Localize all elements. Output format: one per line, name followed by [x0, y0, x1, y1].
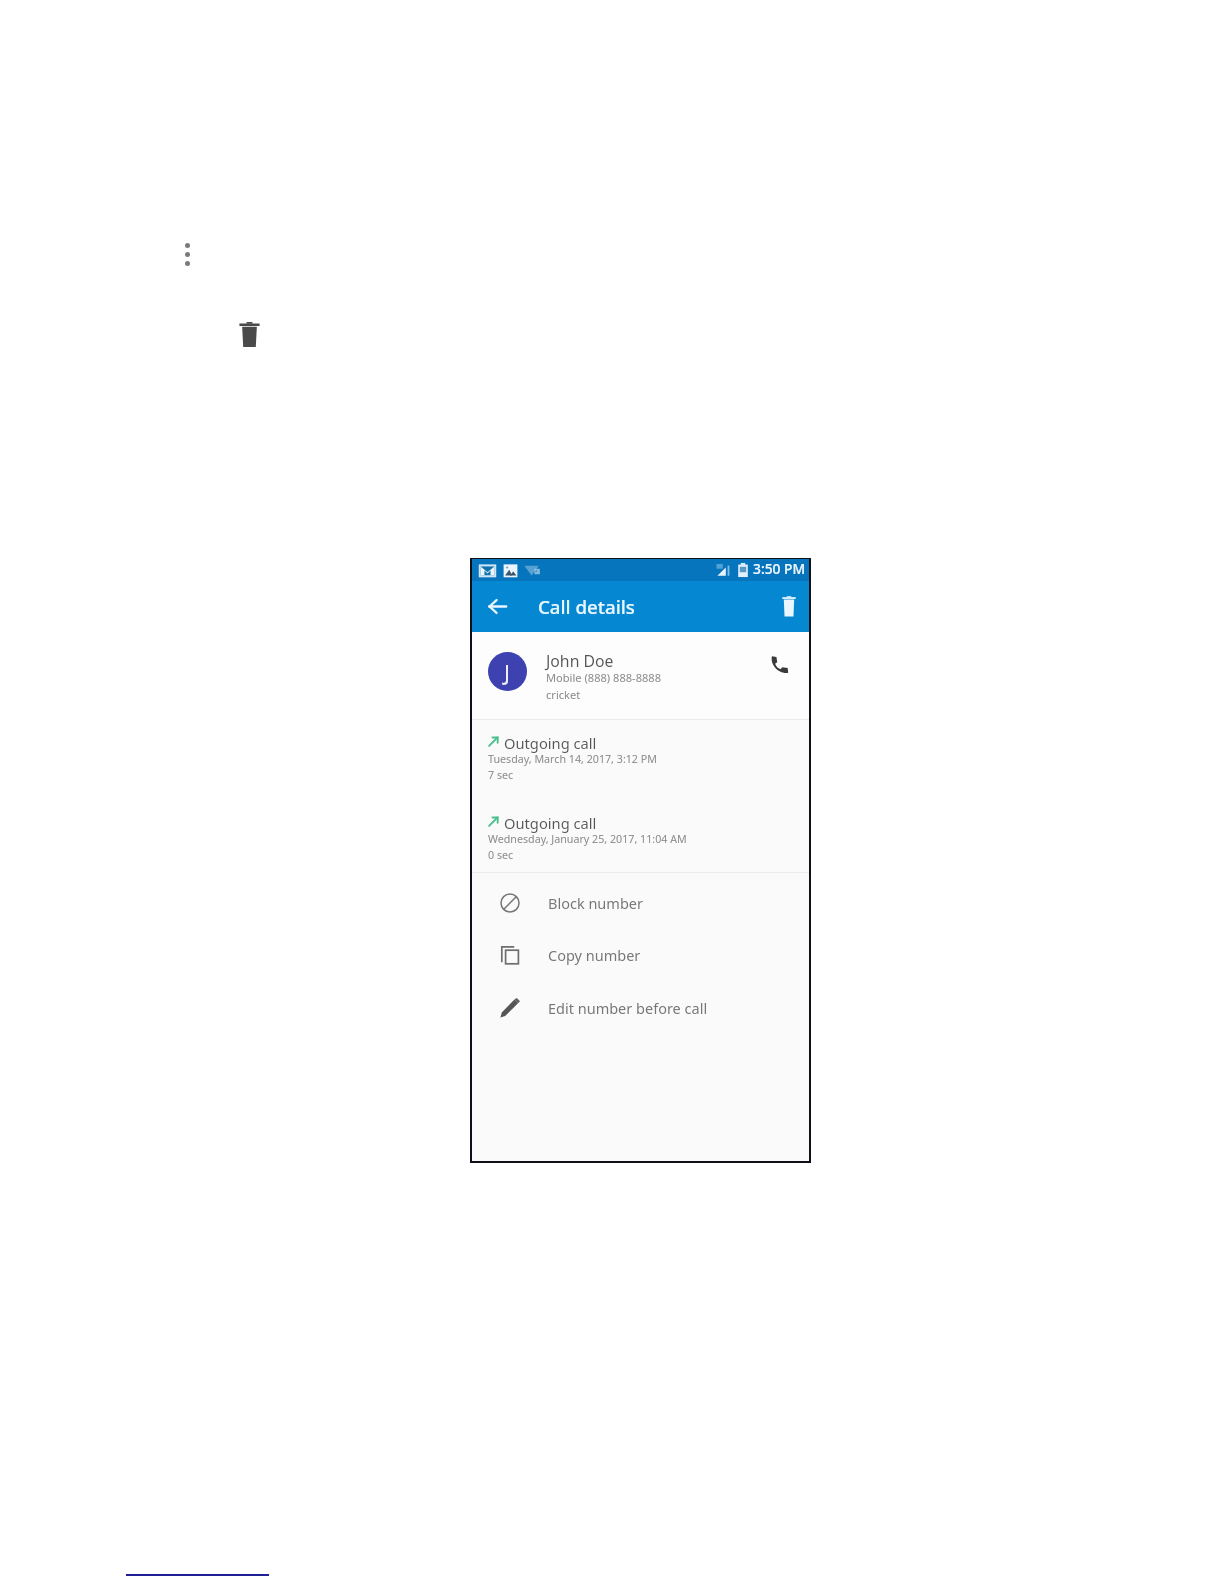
staticText: Copy number: [548, 945, 641, 965]
button[interactable]: Delete call log: [775, 592, 803, 620]
staticText: Mobile (888) 888-8888: [546, 670, 662, 685]
staticText: cricket: [546, 687, 581, 702]
button[interactable]: J: [472, 632, 809, 719]
staticText: 7 sec: [488, 768, 514, 783]
button[interactable]: Outgoing call: [472, 803, 809, 879]
staticText: Wednesday, January 25, 2017, 11:04 AM: [488, 832, 687, 847]
staticText: Outgoing call: [504, 733, 597, 753]
staticText: 0 sec: [488, 848, 514, 863]
staticText: Outgoing call: [504, 813, 597, 833]
button[interactable]: More options: [177, 236, 197, 272]
button[interactable]: Call: [763, 648, 795, 680]
staticText: Edit number before call: [548, 998, 708, 1018]
staticText: J: [504, 657, 511, 687]
button[interactable]: Outgoing call: [472, 723, 809, 799]
button[interactable]: Copy number: [472, 929, 809, 981]
staticText: Call details: [538, 594, 635, 619]
staticText: John Doe: [546, 650, 614, 672]
button[interactable]: Block number: [472, 877, 809, 929]
button[interactable]: Edit number before call: [472, 982, 809, 1034]
staticText: Block number: [548, 893, 643, 913]
button[interactable]: Back: [484, 593, 511, 620]
staticText: 3:50 PM: [753, 559, 806, 578]
staticText: Tuesday, March 14, 2017, 3:12 PM: [488, 752, 657, 767]
button[interactable]: Delete: [234, 316, 264, 352]
